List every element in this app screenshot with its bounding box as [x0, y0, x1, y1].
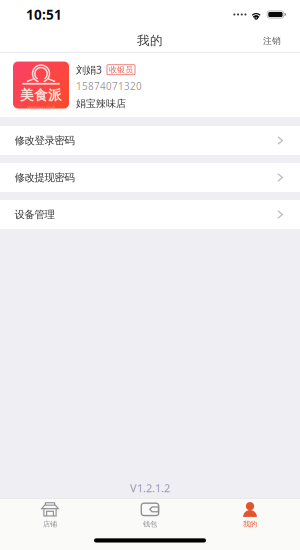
staticText: 15874071320 [76, 79, 142, 93]
button[interactable]: 店铺 [0, 498, 100, 527]
staticText: 我的 [137, 33, 163, 49]
staticText: 我的 [243, 519, 257, 529]
button[interactable]: 修改提现密码 [0, 163, 300, 192]
button[interactable]: 钱包 [100, 498, 200, 527]
button[interactable]: 修改登录密码 [0, 126, 300, 155]
staticText: 美食派 [20, 87, 62, 104]
button[interactable]: 设备管理 [0, 200, 300, 229]
button[interactable]: 我的 [200, 498, 300, 527]
staticText: 娟宝辣味店 [76, 97, 126, 110]
staticText: 钱包 [143, 519, 157, 529]
staticText: 注销 [263, 35, 281, 46]
staticText: 收银员 [109, 65, 133, 75]
staticText: V1.2.1.2 [130, 481, 170, 495]
staticText: 刘娟3 [76, 63, 102, 77]
staticText: 10:51 [26, 5, 62, 24]
staticText: 修改提现密码 [14, 171, 74, 184]
staticText: 设备管理 [14, 208, 54, 221]
staticText: 店铺 [43, 519, 57, 529]
staticText: mtsnew.com [27, 104, 55, 111]
staticText: 修改登录密码 [14, 134, 74, 147]
button[interactable]: 注销 [253, 28, 300, 54]
